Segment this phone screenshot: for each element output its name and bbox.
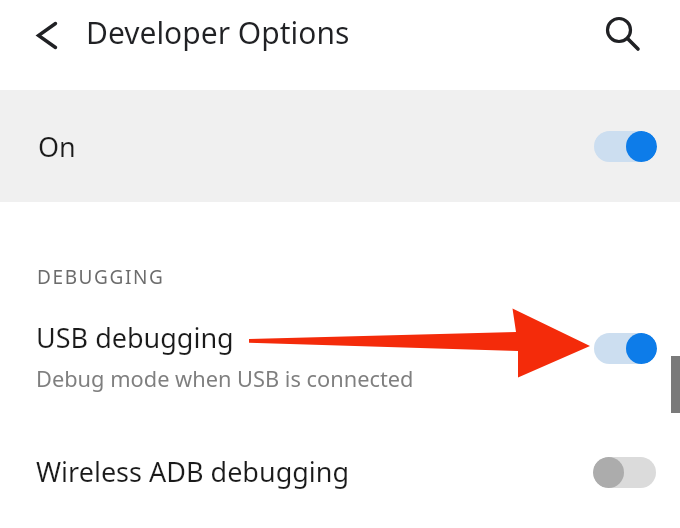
button[interactable] (594, 131, 657, 162)
button[interactable]: Wireless ADB debugging (0, 425, 680, 520)
staticText: DEBUGGING (37, 264, 165, 290)
button[interactable] (593, 457, 656, 488)
staticText: Debug mode when USB is connected (36, 364, 414, 394)
button[interactable] (594, 333, 657, 364)
staticText: Developer Options (86, 12, 350, 53)
staticText: On (38, 128, 76, 165)
button[interactable]: USB debugging (0, 300, 680, 405)
button[interactable] (24, 11, 72, 59)
staticText: Wireless ADB debugging (36, 453, 350, 490)
staticText: USB debugging (36, 319, 234, 356)
button[interactable]: On (0, 90, 680, 202)
button[interactable] (596, 7, 644, 55)
